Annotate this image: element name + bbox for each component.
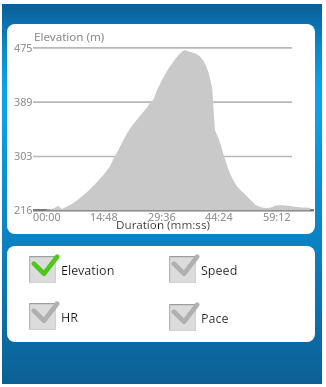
staticText: 14:48 [90, 209, 118, 224]
staticText: 216 [14, 202, 33, 217]
button[interactable]: Pace [169, 304, 229, 331]
button[interactable]: Elevation [29, 256, 115, 283]
staticText: 389 [14, 94, 33, 109]
staticText: 44:24 [205, 209, 233, 224]
staticText: Elevation (m) [34, 29, 105, 45]
staticText: 59:12 [263, 209, 291, 224]
staticText: HR [61, 309, 79, 326]
staticText: Pace [201, 310, 229, 327]
staticText: 303 [14, 148, 33, 163]
staticText: Speed [201, 262, 238, 279]
staticText: 475 [14, 40, 33, 55]
button[interactable]: HR [29, 303, 79, 330]
staticText: Elevation [61, 262, 115, 279]
staticText: 29:36 [148, 209, 176, 224]
button[interactable]: Speed [169, 256, 238, 283]
staticText: 00:00 [33, 209, 61, 224]
staticText: Duration (mm:ss) [116, 217, 210, 233]
